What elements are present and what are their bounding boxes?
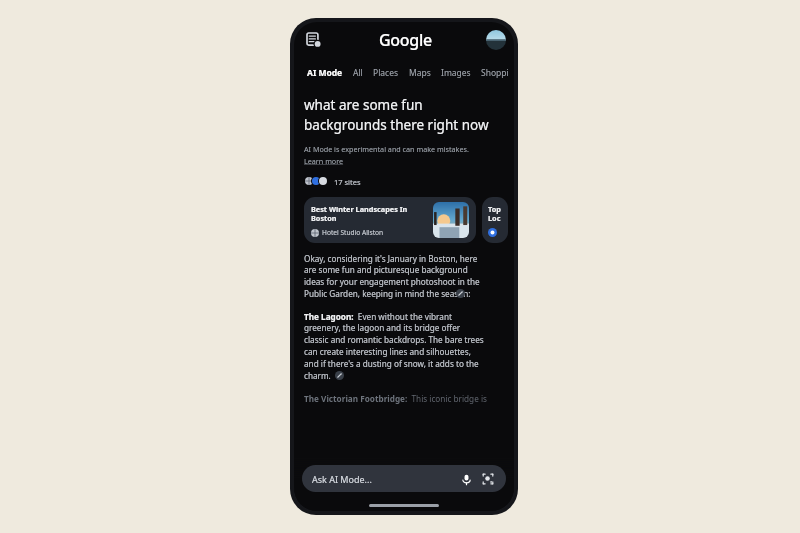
button[interactable]: 17 sites [304,175,361,188]
staticText: All [353,67,363,79]
staticText: Learn more [304,156,344,166]
button[interactable]: Maps [404,65,436,81]
button[interactable]: Shopping [476,65,514,81]
button[interactable]: Images [436,65,476,81]
staticText: AI Mode [307,67,343,79]
staticText: Google [379,29,432,51]
button[interactable]: Learn more [304,156,344,166]
button[interactable]: AI Mode [302,65,348,81]
staticText: Places [373,67,399,79]
staticText: Best Winter Landscapes In Boston [311,204,408,224]
staticText: The Victorian Footbridge: This iconic br… [304,393,487,404]
staticText: Ask AI Mode... [312,473,372,485]
button[interactable]: All [348,65,368,81]
button[interactable]: Voice search [458,471,474,487]
staticText: Hotel Studio Allston [322,228,384,237]
button[interactable]: Top Loc [482,197,508,243]
staticText: The Lagoon: Even without the vibrant gre… [304,311,484,382]
staticText: Okay, considering it's January in Boston… [304,253,480,300]
staticText: 17 sites [334,177,361,187]
staticText: Shopping [481,67,509,79]
staticText: what are some fun backgrounds there righ… [304,96,489,134]
staticText: Top Loc [488,204,501,224]
button[interactable]: Ask AI Mode... [302,465,506,492]
button[interactable]: Google Lens [480,471,496,487]
button[interactable]: Places [368,65,404,81]
staticText: AI Mode is experimental and can make mis… [304,144,469,154]
button[interactable]: Best Winter Landscapes In Boston [304,197,476,243]
staticText: Maps [409,67,431,79]
button[interactable]: History [302,28,326,52]
staticText: Images [441,67,471,79]
button[interactable]: Account [486,30,506,50]
